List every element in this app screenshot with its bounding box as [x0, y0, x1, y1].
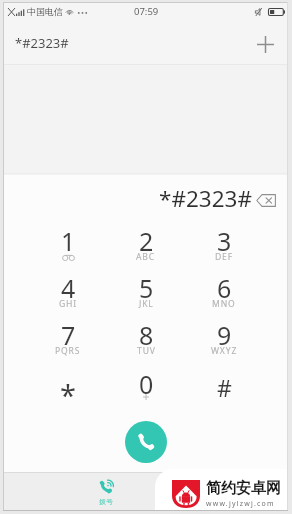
button[interactable]: 7	[29, 313, 107, 360]
staticText: 6	[217, 271, 232, 305]
staticText: 中国电信	[27, 6, 63, 17]
button[interactable]: 6	[185, 266, 263, 313]
staticText: 0	[139, 367, 154, 401]
staticText: JKL	[139, 298, 154, 310]
staticText: 1	[61, 224, 76, 258]
staticText: *	[60, 375, 76, 414]
button[interactable]: 4	[29, 266, 107, 313]
button[interactable]: Add contact	[245, 24, 285, 64]
staticText: TUV	[137, 345, 156, 357]
staticText: 5	[139, 271, 154, 305]
staticText: MNO	[212, 298, 236, 310]
staticText: www.jylzwj.com	[206, 499, 275, 509]
staticText: 8	[139, 318, 154, 352]
staticText: 3	[217, 224, 232, 258]
staticText: 简约安卓网	[206, 479, 281, 498]
button[interactable]: 2	[107, 219, 185, 266]
button[interactable]: 5	[107, 266, 185, 313]
staticText: 9	[217, 318, 232, 352]
staticText: #	[217, 372, 232, 403]
button[interactable]: 8	[107, 313, 185, 360]
button[interactable]: Backspace	[249, 183, 283, 217]
staticText: 7	[61, 318, 76, 352]
staticText: GHI	[59, 298, 78, 310]
button[interactable]: 9	[185, 313, 263, 360]
staticText: 4	[61, 271, 76, 305]
staticText: 07:59	[134, 5, 159, 18]
staticText: 2	[139, 224, 154, 258]
staticText: *#2323#	[15, 34, 69, 52]
staticText: WXYZ	[211, 345, 238, 357]
staticText: DEF	[215, 251, 234, 263]
button[interactable]: 拨号	[86, 473, 126, 512]
staticText: 拨号	[99, 497, 113, 506]
button[interactable]: *	[29, 360, 107, 407]
button[interactable]: Call	[125, 421, 167, 463]
staticText: *#2323#	[159, 183, 252, 214]
staticText: PQRS	[55, 345, 81, 357]
button[interactable]: 3	[185, 219, 263, 266]
button[interactable]: #	[185, 360, 263, 407]
button[interactable]: 0	[107, 360, 185, 407]
staticText: ABC	[136, 251, 156, 263]
button[interactable]: 1	[29, 219, 107, 266]
